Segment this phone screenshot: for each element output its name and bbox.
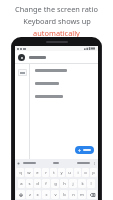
button[interactable]: k [78,179,86,188]
button[interactable]: c [42,190,50,199]
button[interactable]: r [42,168,49,177]
button[interactable]: m [78,190,86,199]
button[interactable] [30,64,98,73]
button[interactable]: Backspace [87,190,97,199]
staticText: v [54,192,57,198]
staticText: d [36,181,39,187]
staticText: y [60,170,63,176]
staticText: u [68,170,71,176]
staticText: g [54,181,57,187]
staticText: l [90,181,92,187]
button[interactable]: More options [93,162,96,165]
staticText: a [20,181,23,187]
button[interactable]: v [51,190,59,199]
staticText: j [72,181,74,187]
button[interactable]: i [74,168,81,177]
button[interactable]: z [26,190,33,199]
button[interactable] [22,161,37,165]
staticText: t [53,170,55,176]
button[interactable]: n [69,190,77,199]
staticText: b [63,192,66,198]
button[interactable]: u [66,168,73,177]
button[interactable]: f [42,179,50,188]
button[interactable]: q [16,168,24,177]
staticText: p [92,170,95,176]
staticText: o [84,170,87,176]
staticText: k [81,181,84,187]
button[interactable] [30,73,98,86]
button[interactable]: y [58,168,65,177]
staticText: x [36,192,39,198]
staticText: w [27,170,31,176]
button[interactable]: Shift [16,190,25,199]
staticText: automatically [33,28,80,38]
button[interactable] [30,86,98,99]
button[interactable]: w [25,168,33,177]
button[interactable] [76,161,91,165]
staticText: q [19,170,22,176]
button[interactable]: e [34,168,41,177]
button[interactable]: a [18,179,25,188]
button[interactable]: o [82,168,89,177]
button[interactable]: s [26,179,33,188]
button[interactable]: p [90,168,97,177]
staticText: m [80,192,84,198]
staticText: n [72,192,75,198]
button[interactable] [52,161,60,165]
button[interactable]: l [87,179,95,188]
button[interactable]: Menu [18,54,25,61]
staticText: z [29,192,31,198]
staticText: Change the screen ratio [15,4,98,14]
button[interactable]: d [34,179,41,188]
button[interactable] [18,69,27,76]
button[interactable]: j [69,179,77,188]
staticText: Keyboard shows up [23,16,91,26]
button[interactable]: g [51,179,59,188]
button[interactable]: h [60,179,68,188]
staticText: s [28,181,31,187]
staticText: r [45,170,47,176]
staticText: h [63,181,66,187]
staticText: c [45,192,48,198]
staticText: f [45,181,47,187]
button[interactable]: t [50,168,57,177]
staticText: e [36,170,39,176]
staticText: i [77,170,79,176]
button[interactable]: x [34,190,41,199]
button[interactable] [75,146,94,154]
button[interactable]: b [60,190,68,199]
